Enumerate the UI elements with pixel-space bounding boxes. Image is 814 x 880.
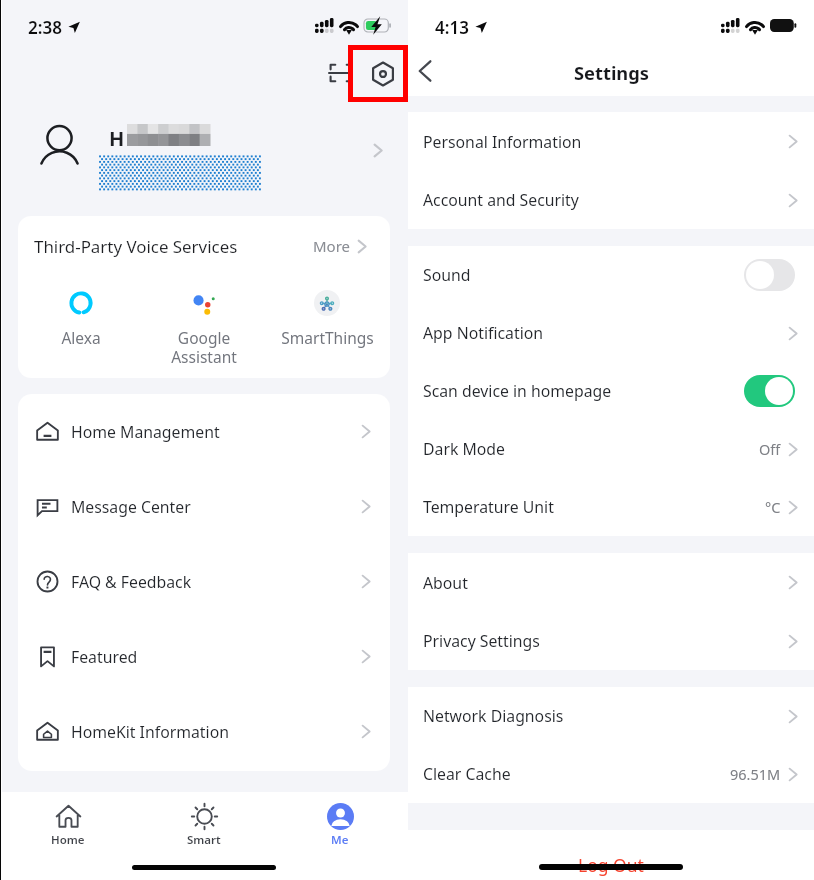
staticText: Off <box>759 439 781 459</box>
staticText: About <box>423 572 468 594</box>
button[interactable]: About <box>423 553 803 612</box>
button[interactable]: Me <box>272 797 408 853</box>
staticText: Network Diagnosis <box>423 705 564 727</box>
staticText: Clear Cache <box>423 763 511 785</box>
staticText: Home <box>51 832 85 848</box>
button[interactable]: Network Diagnosis <box>423 687 803 745</box>
staticText: Alexa <box>61 327 101 348</box>
button[interactable]: Privacy Settings <box>423 612 803 670</box>
staticText: FAQ & Feedback <box>71 571 192 593</box>
button[interactable]: Third-Party Voice Services <box>34 216 372 276</box>
staticText: Message Center <box>71 496 191 518</box>
staticText: Featured <box>71 646 138 668</box>
staticText: Settings <box>574 60 649 85</box>
button[interactable]: Settings <box>353 50 403 97</box>
staticText: Privacy Settings <box>423 630 540 652</box>
button[interactable]: App Notification <box>423 304 803 362</box>
button[interactable]: Temperature Unit <box>423 478 803 536</box>
button[interactable]: Home Management <box>36 394 376 469</box>
staticText: 96.51M <box>730 764 781 784</box>
button[interactable]: SmartThings <box>267 290 387 348</box>
staticText: Scan device in homepage <box>423 380 612 402</box>
staticText: Home Management <box>71 421 220 443</box>
staticText: Me <box>331 832 349 848</box>
button[interactable] <box>744 375 795 407</box>
button[interactable]: Log Out <box>408 852 814 878</box>
staticText: Log Out <box>578 853 644 877</box>
button[interactable]: Smart <box>136 797 272 853</box>
staticText: SmartThings <box>281 327 374 348</box>
staticText: Temperature Unit <box>423 496 554 518</box>
button[interactable]: Featured <box>36 619 376 694</box>
button[interactable]: Scan device in homepage <box>423 362 803 420</box>
staticText: Account and Security <box>423 189 579 211</box>
staticText: Sound <box>423 264 471 286</box>
button[interactable]: Google Assistant <box>144 290 264 367</box>
staticText: Smart <box>187 832 221 848</box>
staticText: App Notification <box>423 322 544 344</box>
staticText: More <box>313 236 351 256</box>
button[interactable]: Account and Security <box>423 171 803 229</box>
button[interactable]: Message Center <box>36 469 376 544</box>
button[interactable]: Sound <box>423 246 803 304</box>
button[interactable]: FAQ & Feedback <box>36 544 376 619</box>
staticText: HomeKit Information <box>71 721 229 743</box>
button[interactable]: Back <box>413 57 441 85</box>
staticText: °C <box>765 497 781 517</box>
button[interactable]: Dark Mode <box>423 420 803 478</box>
button[interactable]: Scan <box>328 60 354 86</box>
button[interactable]: HomeKit Information <box>36 694 376 769</box>
staticText: Google Assistant <box>171 327 237 367</box>
button[interactable] <box>744 259 795 291</box>
staticText: Dark Mode <box>423 438 505 460</box>
staticText: 2:38 <box>28 16 62 39</box>
staticText: H <box>109 125 125 152</box>
staticText: Personal Information <box>423 131 582 153</box>
staticText: Third-Party Voice Services <box>34 235 238 258</box>
button[interactable]: H <box>0 100 408 200</box>
button[interactable]: Personal Information <box>423 112 803 171</box>
button[interactable]: Home <box>0 797 136 853</box>
staticText: 4:13 <box>435 16 469 39</box>
button[interactable]: Clear Cache <box>423 745 803 803</box>
button[interactable]: Alexa <box>21 290 141 348</box>
